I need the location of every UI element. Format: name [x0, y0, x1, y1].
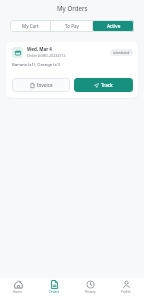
button[interactable]: Wed, Mar 4	[6, 42, 138, 98]
button[interactable]: Home	[0, 278, 36, 296]
button[interactable]: Active	[93, 20, 134, 32]
button[interactable]: To Pay	[51, 20, 92, 32]
button[interactable]: Invoice	[12, 78, 70, 92]
staticText: My Orders	[57, 4, 88, 12]
staticText: Wed, Mar 4	[27, 46, 52, 52]
staticText: Order #ORD-20234712	[27, 53, 66, 58]
staticText: Track	[101, 82, 113, 88]
button[interactable]: Track	[74, 78, 133, 92]
staticText: Banana (x1), Orange (x1)	[12, 62, 61, 68]
button[interactable]: History	[72, 278, 108, 296]
button[interactable]: Orders	[36, 278, 72, 296]
staticText: scheduled	[113, 50, 130, 55]
staticText: Invoice	[37, 82, 53, 88]
staticText: History	[85, 290, 96, 294]
staticText: Home	[13, 290, 23, 294]
staticText: Orders	[49, 290, 60, 294]
button[interactable]: Profile	[108, 278, 144, 296]
staticText: Active	[107, 23, 121, 29]
staticText: To Pay	[65, 23, 79, 29]
staticText: Profile	[121, 290, 131, 294]
staticText: My Cart	[22, 23, 39, 29]
button[interactable]: My Cart	[10, 20, 50, 32]
